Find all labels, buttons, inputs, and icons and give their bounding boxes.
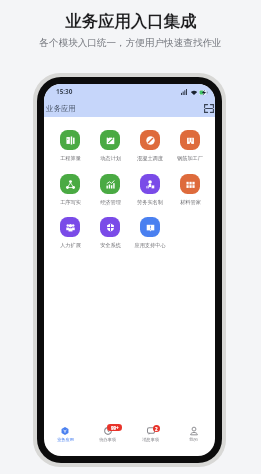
button[interactable]: 扫一扫 — [202, 102, 215, 115]
button[interactable]: 混凝土调度 — [130, 130, 170, 162]
button[interactable]: 劳务实名制 — [130, 174, 170, 206]
staticText: 材料管家 — [180, 199, 201, 206]
staticText: 动态计划 — [100, 155, 121, 162]
staticText: 钢筋加工厂 — [177, 155, 203, 162]
staticText: 应用支持中心 — [134, 242, 166, 249]
staticText: 业务应用 — [57, 437, 74, 442]
staticText: 人力扩展 — [60, 242, 81, 249]
button[interactable]: 我的 — [172, 426, 215, 442]
button[interactable]: 工程算量 — [50, 130, 90, 162]
button[interactable]: 应用支持中心 — [130, 217, 170, 249]
staticText: 经济管理 — [100, 199, 121, 206]
staticText: 15:30 — [56, 87, 73, 96]
staticText: 工序写实 — [60, 199, 81, 206]
staticText: 消息事项 — [142, 437, 159, 442]
button[interactable]: 工序写实 — [50, 174, 90, 206]
button[interactable]: 安全系统 — [90, 217, 130, 249]
staticText: 99+ — [111, 425, 119, 431]
button[interactable]: 99+ — [86, 426, 129, 442]
staticText: 各个模块入口统一，方便用户快速查找作业 — [0, 37, 261, 49]
button[interactable]: 2 — [129, 426, 172, 442]
staticText: 2 — [155, 426, 158, 432]
button[interactable]: 经济管理 — [90, 174, 130, 206]
staticText: 待办事项 — [99, 437, 116, 442]
button[interactable]: 动态计划 — [90, 130, 130, 162]
button[interactable]: 钢筋加工厂 — [170, 130, 210, 162]
staticText: 我的 — [189, 437, 198, 442]
staticText: 劳务实名制 — [137, 199, 163, 206]
staticText: 业务应用入口集成 — [0, 11, 261, 32]
button[interactable]: 材料管家 — [170, 174, 210, 206]
button[interactable]: 人力扩展 — [50, 217, 90, 249]
staticText: 业务应用 — [46, 104, 76, 113]
button[interactable]: 业务应用 — [44, 426, 86, 442]
staticText: 混凝土调度 — [137, 155, 163, 162]
staticText: 安全系统 — [100, 242, 121, 249]
staticText: 工程算量 — [60, 155, 81, 162]
